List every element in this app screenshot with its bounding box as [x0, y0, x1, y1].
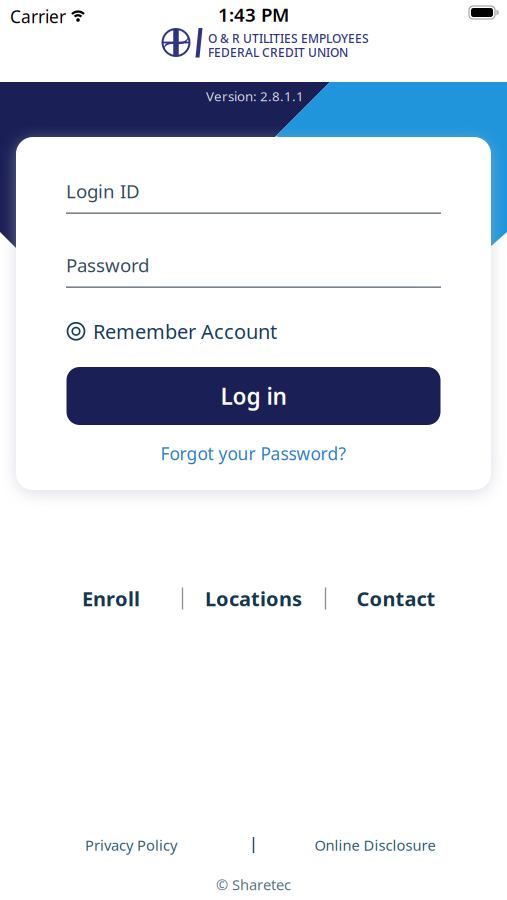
staticText: Version: 2.8.1.1: [206, 87, 304, 105]
staticText: Log in: [220, 381, 286, 411]
staticText: Contact: [356, 585, 435, 612]
button[interactable]: Enroll: [56, 581, 166, 615]
staticText: Login ID: [66, 178, 140, 203]
button[interactable]: Password: [66, 245, 441, 295]
button[interactable]: Online Disclosure: [300, 832, 450, 858]
button[interactable]: Remember Account: [67, 318, 277, 345]
staticText: Privacy Policy: [85, 835, 177, 855]
staticText: Locations: [205, 585, 302, 612]
staticText: Forgot your Password?: [160, 442, 346, 465]
staticText: Carrier: [10, 5, 66, 28]
button[interactable]: Contact: [341, 581, 451, 615]
button[interactable]: Login ID: [66, 171, 441, 221]
button[interactable]: Log in: [66, 367, 440, 425]
button[interactable]: Privacy Policy: [66, 832, 196, 858]
staticText: Online Disclosure: [314, 835, 435, 855]
staticText: Enroll: [82, 585, 140, 612]
staticText: © Sharetec: [216, 875, 291, 894]
staticText: 1:43 PM: [218, 2, 289, 27]
button[interactable]: Forgot your Password?: [160, 442, 346, 465]
staticText: Remember Account: [93, 318, 277, 345]
staticText: O & R UTILITIES EMPLOYEES: [208, 30, 369, 46]
staticText: FEDERAL CREDIT UNION: [208, 44, 348, 60]
staticText: Password: [66, 252, 149, 277]
button[interactable]: Locations: [193, 581, 313, 615]
